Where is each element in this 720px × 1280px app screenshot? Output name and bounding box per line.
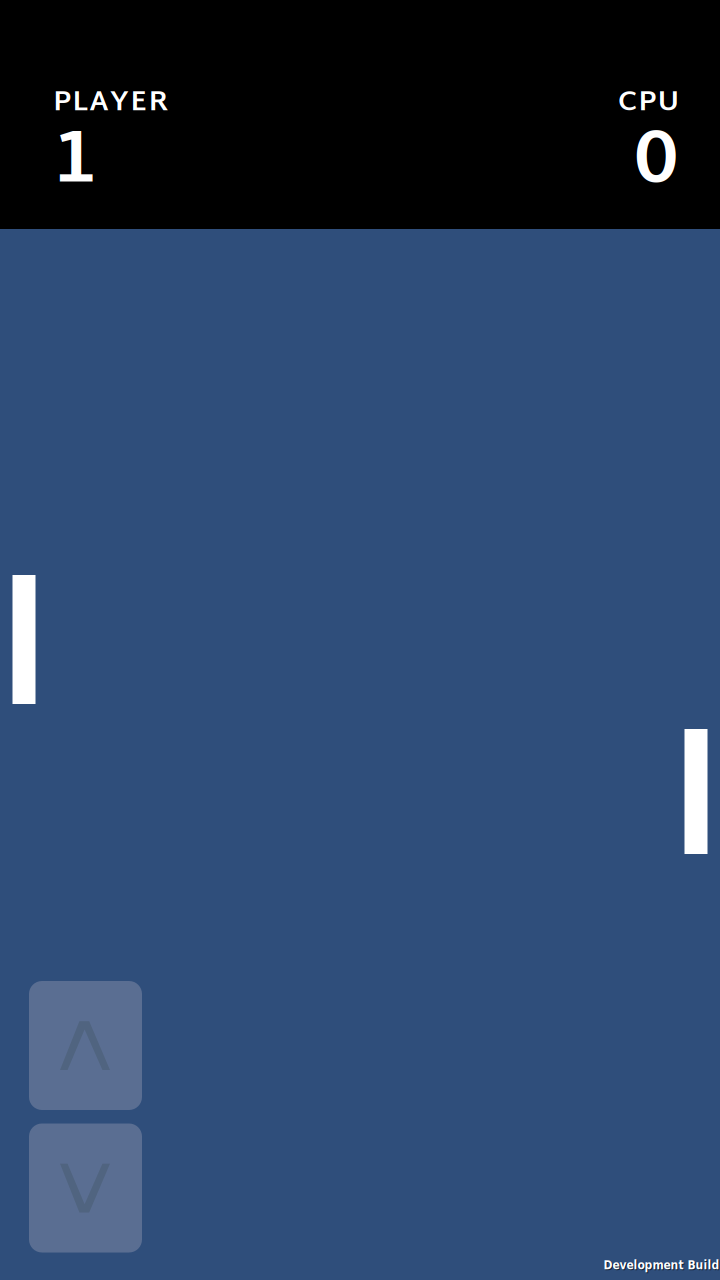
staticText: CPU (618, 78, 679, 129)
staticText: 1 (52, 97, 96, 231)
staticText: PLAYER (53, 78, 168, 129)
button[interactable]: Move paddle up (29, 981, 142, 1110)
staticText: 0 (634, 97, 678, 231)
staticText: Development Build (603, 1258, 719, 1272)
button[interactable]: Move paddle down (29, 1123, 142, 1252)
staticText: Development Build (604, 1259, 720, 1273)
